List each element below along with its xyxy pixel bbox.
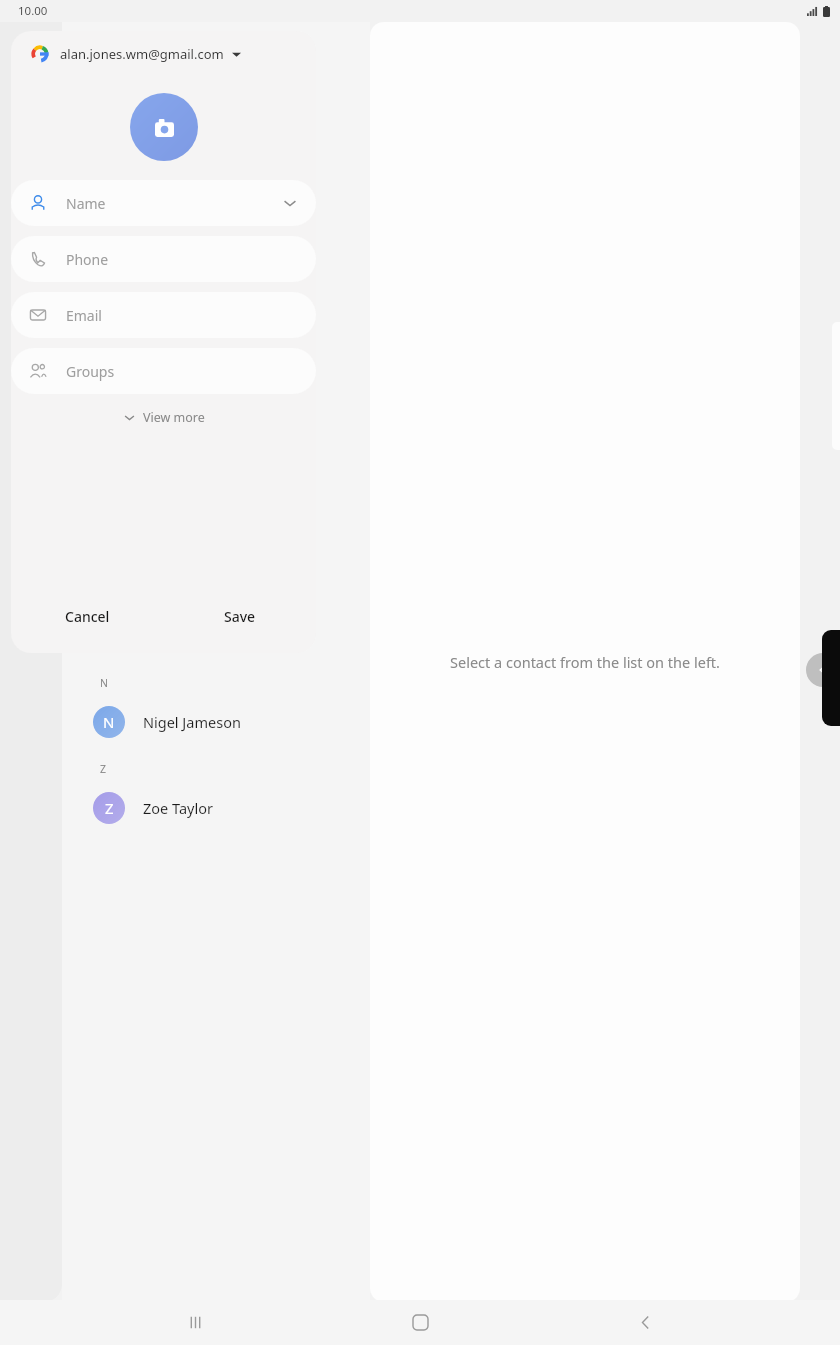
staticText: 10.00	[18, 3, 48, 19]
staticText: alan.jones.wm@gmail.com	[60, 45, 224, 63]
staticText: Z	[100, 762, 107, 776]
button[interactable]: Name	[11, 180, 316, 226]
button[interactable]: Z	[62, 782, 370, 834]
staticText: N	[100, 676, 108, 690]
staticText: Zoe Taylor	[143, 798, 213, 818]
staticText: Groups	[66, 362, 115, 381]
button[interactable]: Back	[615, 1300, 675, 1345]
button[interactable]: Add photo	[130, 93, 198, 161]
staticText: Save	[224, 607, 256, 626]
button[interactable]: Groups	[11, 348, 316, 394]
button[interactable]: Recent apps	[165, 1300, 225, 1345]
button[interactable]: View more	[11, 394, 316, 440]
button[interactable]: alan.jones.wm@gmail.com	[11, 31, 316, 77]
staticText: Phone	[66, 250, 109, 269]
button[interactable]: N	[62, 696, 370, 748]
staticText: Email	[66, 306, 102, 325]
staticText: Z	[105, 798, 114, 818]
staticText: Name	[66, 194, 106, 213]
staticText: Nigel Jameson	[143, 712, 241, 732]
staticText: N	[103, 712, 115, 732]
staticText: View more	[143, 409, 205, 426]
button[interactable]: Home	[390, 1300, 450, 1345]
button[interactable]: Email	[11, 292, 316, 338]
button[interactable]: Save	[163, 579, 316, 653]
button[interactable]: Cancel	[11, 579, 163, 653]
button[interactable]: Phone	[11, 236, 316, 282]
staticText: Select a contact from the list on the le…	[450, 652, 720, 672]
staticText: Cancel	[65, 607, 110, 626]
button[interactable]: Edge panel handle	[806, 653, 840, 687]
